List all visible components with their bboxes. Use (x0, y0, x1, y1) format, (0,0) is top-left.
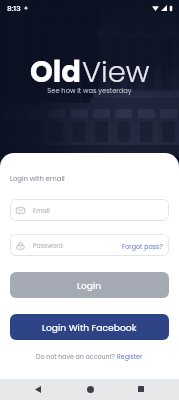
button[interactable]: Register (117, 352, 143, 361)
staticText: Login With Facebook (42, 321, 137, 334)
staticText: Do not have an account? (36, 352, 117, 361)
staticText: 8:13 (7, 3, 21, 13)
button[interactable]: Forgot pass? (122, 242, 163, 251)
button[interactable]: Back (28, 379, 48, 399)
staticText: Password (33, 241, 63, 250)
button[interactable]: Login With Facebook (10, 314, 169, 340)
staticText: Old (30, 52, 82, 93)
staticText: View (82, 52, 150, 93)
staticText: Email (33, 206, 50, 215)
staticText: Login with email (10, 174, 65, 184)
button[interactable]: Email (10, 199, 169, 221)
staticText: See how it was yesterday (0, 86, 179, 95)
button[interactable]: Password (10, 234, 169, 256)
staticText: Login (77, 279, 102, 292)
button[interactable]: Login (10, 272, 169, 298)
button[interactable]: Home (80, 379, 100, 399)
button[interactable]: Recent apps (131, 379, 151, 399)
